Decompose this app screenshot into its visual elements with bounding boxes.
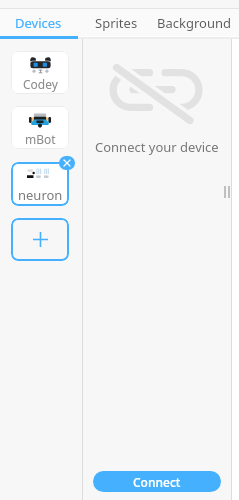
staticText: Background — [157, 14, 231, 32]
staticText: Connect your device — [95, 138, 219, 156]
button[interactable]: Sprites — [81, 9, 151, 36]
button[interactable]: Background — [151, 9, 236, 36]
staticText: neuron — [18, 186, 63, 204]
staticText: Connect — [133, 474, 181, 490]
button[interactable]: Codey — [11, 51, 69, 94]
staticText: mBot — [25, 131, 56, 147]
button[interactable]: Remove neuron device — [59, 156, 75, 170]
button[interactable]: mBot — [11, 106, 69, 149]
button[interactable]: Add device — [11, 218, 69, 261]
button[interactable]: Connect — [93, 471, 221, 492]
button[interactable]: neuron — [11, 162, 69, 206]
staticText: Codey — [23, 76, 58, 92]
staticText: Sprites — [95, 14, 138, 32]
staticText: Devices — [15, 14, 62, 32]
button[interactable]: Devices — [0, 9, 79, 36]
